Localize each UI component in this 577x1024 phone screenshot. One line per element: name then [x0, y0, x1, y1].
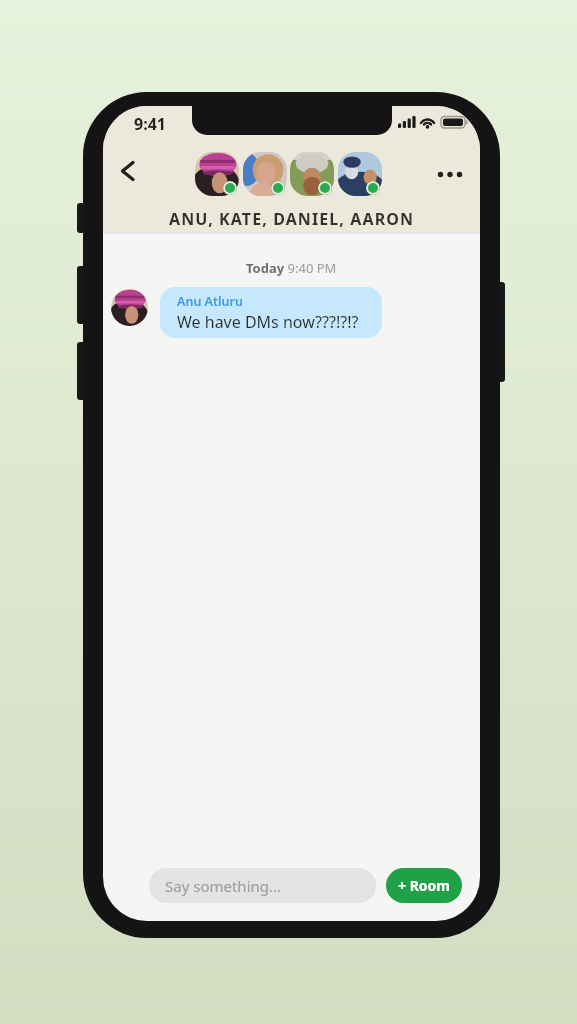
button[interactable]: Anu Atluru [160, 287, 382, 338]
staticText: Today 9:40 PM [246, 259, 337, 277]
button[interactable] [243, 152, 287, 196]
staticText: + Room [398, 876, 450, 895]
staticText: Anu Atluru [177, 293, 243, 310]
button[interactable]: Say something... [149, 868, 376, 903]
staticText: We have DMs now???!?!? [177, 311, 359, 333]
button[interactable] [109, 153, 145, 189]
staticText: 9:41 [134, 113, 166, 135]
button[interactable]: + Room [386, 868, 462, 903]
button[interactable] [429, 163, 469, 187]
button[interactable] [195, 152, 239, 196]
staticText: Say something... [165, 876, 282, 896]
button[interactable] [290, 152, 334, 196]
staticText: ANU, KATE, DANIEL, AARON [169, 208, 415, 230]
button[interactable] [338, 152, 382, 196]
